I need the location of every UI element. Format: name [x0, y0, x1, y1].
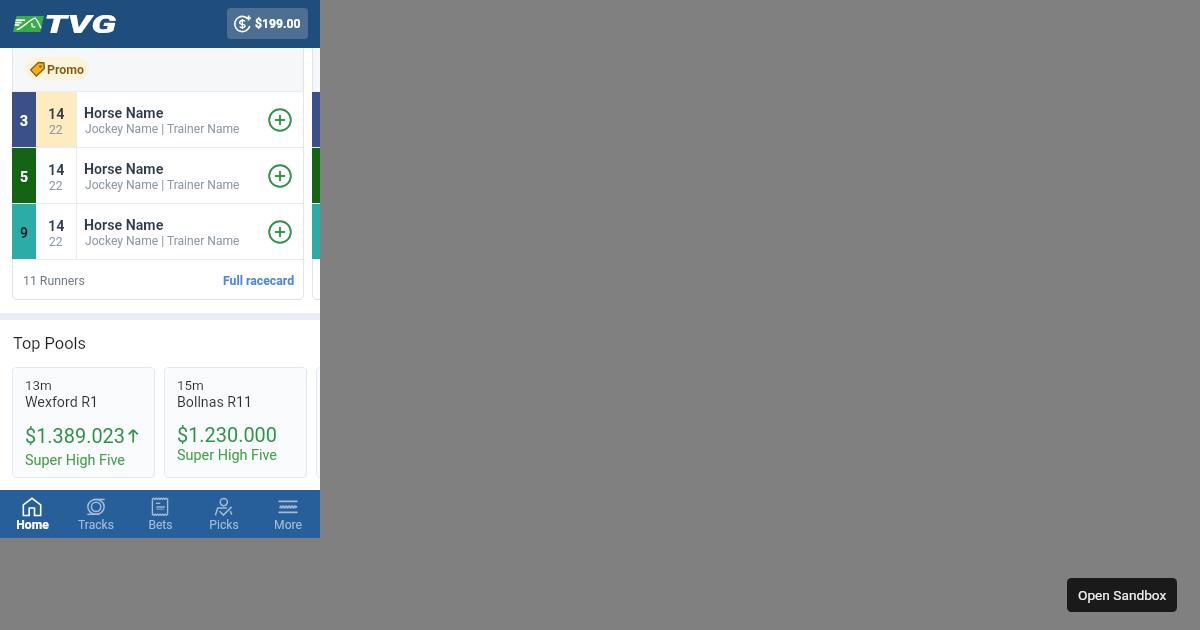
button[interactable]: Home: [0, 490, 64, 538]
button[interactable]: 3: [12, 92, 304, 148]
button[interactable]: 9: [12, 204, 304, 260]
staticText: Super High Five: [25, 452, 125, 469]
staticText: Picks: [209, 518, 239, 532]
button[interactable]: 15m: [164, 367, 307, 478]
button[interactable]: $199.00: [227, 8, 308, 39]
button[interactable]: 5: [312, 148, 320, 204]
button[interactable]: 11 Runners: [12, 260, 304, 300]
button[interactable]: Add runner to bet slip: [259, 92, 301, 147]
staticText: 15m: [177, 378, 204, 394]
staticText: 22: [49, 235, 63, 249]
staticText: 22: [49, 179, 63, 193]
button[interactable]: TVG: [11, 8, 117, 40]
staticText: Full racecard: [223, 274, 295, 288]
staticText: 5: [20, 169, 28, 185]
staticText: Bollnas R11: [177, 394, 252, 411]
staticText: Horse Name: [84, 161, 164, 178]
button[interactable]: Add runner to bet slip: [259, 148, 301, 203]
button[interactable]: Promo: [25, 57, 89, 80]
button[interactable]: Open Sandbox: [1067, 578, 1177, 612]
staticText: 11 Runners: [23, 274, 85, 288]
staticText: $199.00: [255, 17, 301, 31]
staticText: Wexford R1: [25, 394, 98, 411]
staticText: More: [274, 518, 302, 532]
staticText: 14: [48, 162, 65, 179]
button[interactable]: 18m: [316, 367, 320, 478]
staticText: Super High Five: [177, 447, 277, 464]
staticText: Open Sandbox: [1078, 587, 1167, 603]
staticText: Jockey Name | Trainer Name: [85, 234, 240, 248]
staticText: Promo: [47, 62, 85, 77]
staticText: Top Pools: [13, 334, 86, 353]
button[interactable]: Tracks: [64, 490, 128, 538]
button[interactable]: 13m: [12, 367, 155, 478]
staticText: Tracks: [78, 518, 114, 532]
staticText: TVG: [44, 8, 116, 39]
staticText: $1.230.000: [177, 424, 277, 447]
staticText: $1.389.023: [25, 425, 125, 448]
button[interactable]: 3: [312, 92, 320, 148]
staticText: 9: [20, 225, 28, 241]
staticText: Bets: [148, 518, 173, 532]
button[interactable]: Add runner to bet slip: [259, 204, 301, 259]
button[interactable]: 5: [12, 148, 304, 204]
button[interactable]: 9: [312, 204, 320, 260]
staticText: Horse Name: [84, 217, 164, 234]
staticText: 3: [20, 113, 28, 129]
staticText: 13m: [25, 378, 52, 394]
button[interactable]: Bets: [128, 490, 192, 538]
button[interactable]: 11 Runners: [312, 260, 320, 300]
staticText: Jockey Name | Trainer Name: [85, 178, 240, 192]
staticText: Jockey Name | Trainer Name: [85, 122, 240, 136]
staticText: 14: [48, 218, 65, 235]
staticText: 22: [49, 123, 63, 137]
button[interactable]: Picks: [192, 490, 256, 538]
staticText: 14: [48, 106, 65, 123]
button[interactable]: More: [256, 490, 320, 538]
staticText: Horse Name: [84, 105, 164, 122]
button[interactable]: Full racecard: [216, 267, 302, 293]
staticText: Home: [16, 518, 49, 532]
